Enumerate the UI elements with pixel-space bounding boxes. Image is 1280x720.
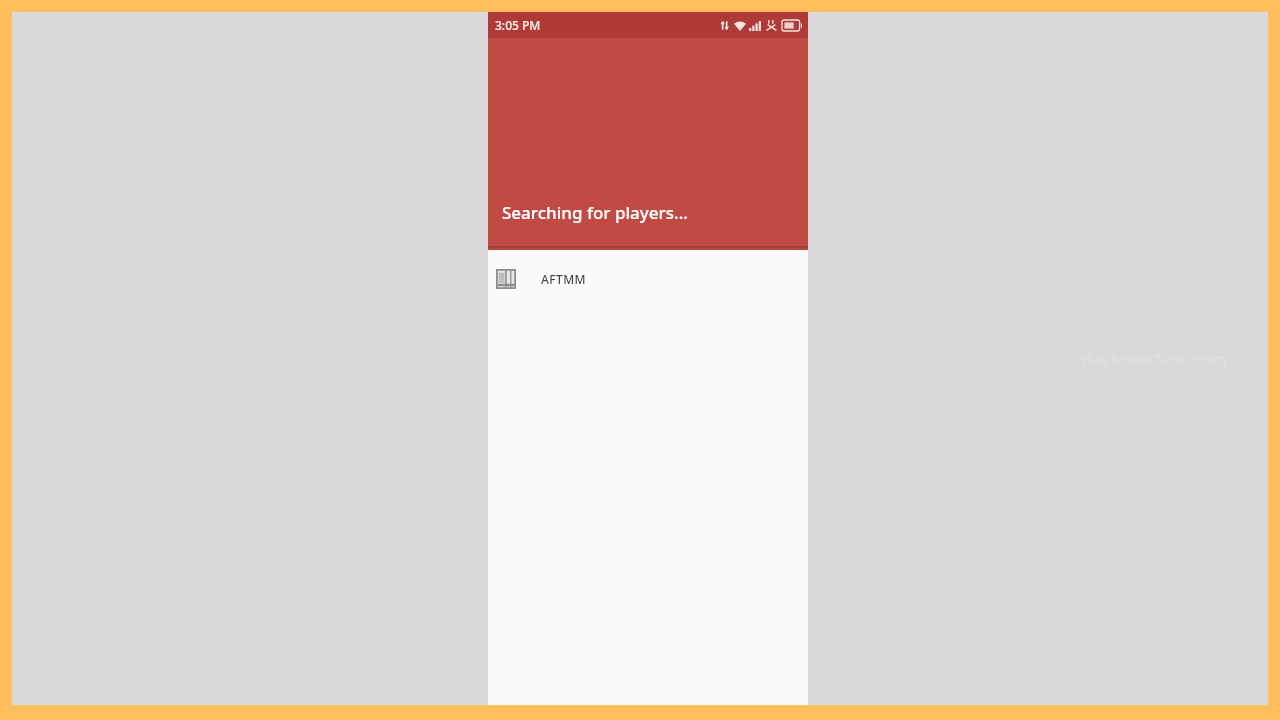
staticText: 3:05 PM: [495, 17, 541, 33]
button[interactable]: Device icon: [488, 254, 808, 304]
other: Device icon: [496, 269, 516, 289]
staticText: Searching for players...: [502, 201, 688, 224]
staticText: AFTMM: [541, 271, 586, 287]
